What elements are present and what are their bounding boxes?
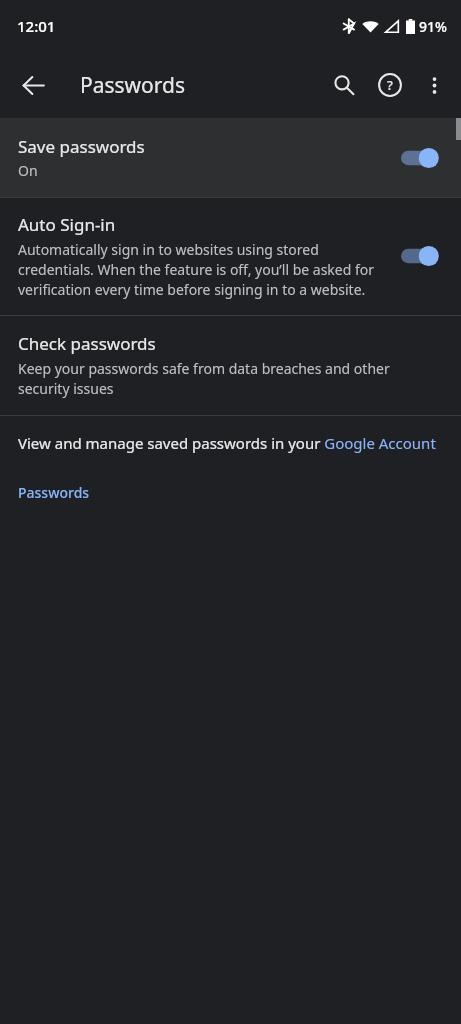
- staticText: Auto Sign-in: [18, 213, 116, 236]
- button[interactable]: More options: [413, 64, 455, 106]
- button[interactable]: Check passwords: [0, 316, 461, 415]
- button[interactable]: View and manage saved passwords in your …: [18, 433, 436, 453]
- staticText: 12:01: [17, 16, 56, 36]
- staticText: ?: [387, 76, 393, 94]
- button[interactable]: Passwords: [18, 483, 90, 502]
- button[interactable]: Back: [10, 62, 56, 108]
- button[interactable]: Save passwords: [0, 118, 461, 197]
- staticText: Automatically sign in to websites using …: [18, 240, 391, 299]
- staticText: View and manage saved passwords in your …: [18, 433, 436, 453]
- button[interactable]: Help: [367, 62, 413, 108]
- staticText: Save passwords: [18, 135, 145, 158]
- button[interactable]: Auto Sign-in: [0, 198, 461, 315]
- staticText: 91%: [419, 17, 447, 36]
- staticText: Passwords: [18, 483, 90, 502]
- staticText: On: [18, 161, 38, 180]
- button[interactable]: Search: [321, 62, 367, 108]
- staticText: Keep your passwords safe from data breac…: [18, 359, 439, 398]
- staticText: Passwords: [80, 71, 186, 100]
- staticText: Check passwords: [18, 332, 156, 355]
